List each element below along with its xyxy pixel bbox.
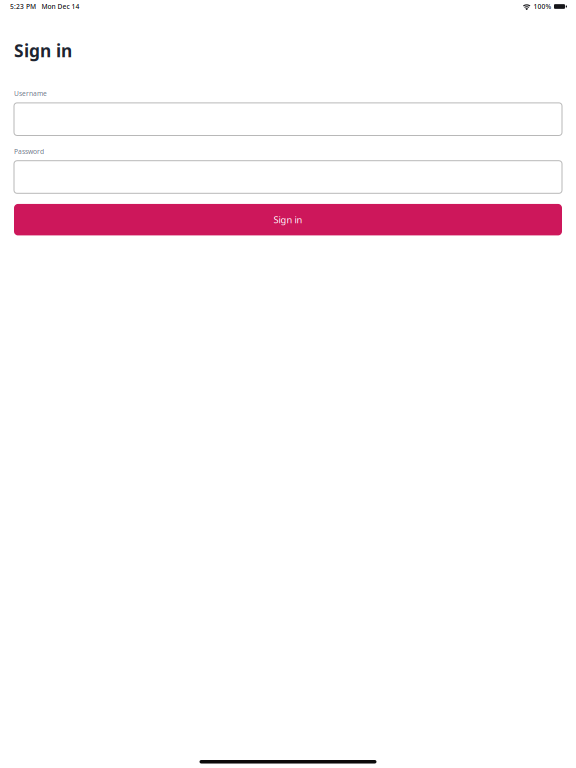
staticText: 100% (533, 2, 551, 11)
staticText: Username (14, 89, 47, 98)
button[interactable]: Sign in (14, 204, 562, 235)
button[interactable]: Password (14, 161, 562, 193)
button[interactable]: Username (14, 103, 562, 135)
staticText: 5:23 PM (10, 2, 36, 11)
staticText: Sign in (14, 39, 72, 62)
staticText: Password (14, 147, 44, 156)
staticText: Mon Dec 14 (41, 2, 79, 11)
staticText: Sign in (273, 213, 302, 226)
